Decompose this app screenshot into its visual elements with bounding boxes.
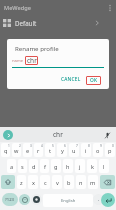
button[interactable]: OK bbox=[86, 76, 101, 85]
button[interactable]: z bbox=[17, 175, 26, 189]
staticText: z bbox=[20, 179, 23, 187]
button[interactable]: Enter bbox=[101, 193, 115, 207]
button[interactable]: o bbox=[93, 143, 103, 157]
button[interactable]: q bbox=[1, 143, 10, 157]
button[interactable]: i bbox=[81, 143, 91, 157]
button[interactable]: d bbox=[29, 159, 38, 173]
staticText: k bbox=[91, 163, 94, 171]
button[interactable]: Open toolbar bbox=[3, 130, 13, 140]
button[interactable]: x bbox=[28, 175, 38, 189]
staticText: 7 bbox=[76, 144, 78, 148]
staticText: q bbox=[4, 147, 8, 155]
staticText: p bbox=[108, 147, 112, 155]
button[interactable]: Shift bbox=[1, 175, 15, 189]
button[interactable]: f bbox=[40, 159, 49, 173]
button[interactable]: Period bbox=[93, 194, 104, 205]
staticText: f bbox=[44, 163, 46, 171]
button[interactable]: a bbox=[7, 159, 16, 173]
staticText: 1 bbox=[8, 144, 10, 148]
button[interactable]: g bbox=[51, 159, 61, 173]
button[interactable]: n bbox=[76, 175, 86, 189]
button[interactable]: English bbox=[43, 194, 93, 207]
staticText: j bbox=[79, 163, 81, 171]
button[interactable]: v bbox=[52, 175, 62, 189]
staticText: . bbox=[98, 196, 100, 203]
button[interactable]: More options bbox=[104, 2, 116, 14]
staticText: 8 bbox=[88, 144, 90, 148]
staticText: s bbox=[21, 163, 24, 171]
button[interactable]: r bbox=[34, 143, 43, 157]
staticText: i bbox=[85, 147, 87, 155]
staticText: Rename profile bbox=[15, 44, 59, 52]
staticText: CANCEL bbox=[61, 76, 81, 83]
button[interactable]: k bbox=[87, 159, 97, 173]
button[interactable]: u bbox=[69, 143, 79, 157]
staticText: r bbox=[37, 147, 40, 155]
button[interactable]: b bbox=[64, 175, 74, 189]
staticText: t bbox=[49, 147, 52, 155]
staticText: x bbox=[32, 179, 35, 187]
staticText: b bbox=[67, 179, 71, 187]
staticText: e bbox=[26, 147, 30, 155]
staticText: chr bbox=[53, 130, 63, 139]
button[interactable]: m bbox=[88, 175, 98, 189]
staticText: n bbox=[79, 179, 83, 187]
button[interactable]: Default bbox=[0, 16, 116, 29]
button[interactable]: CANCEL bbox=[58, 73, 83, 85]
staticText: h bbox=[66, 163, 70, 171]
button[interactable]: h bbox=[63, 159, 73, 173]
button[interactable]: j bbox=[75, 159, 85, 173]
button[interactable]: Settings bbox=[31, 194, 42, 205]
staticText: u bbox=[72, 147, 76, 155]
staticText: g bbox=[54, 163, 58, 171]
staticText: v bbox=[56, 179, 59, 187]
button[interactable]: c bbox=[40, 175, 50, 189]
staticText: 5 bbox=[52, 144, 54, 148]
staticText: d bbox=[32, 163, 36, 171]
staticText: English bbox=[61, 198, 76, 204]
staticText: Default bbox=[15, 19, 37, 27]
staticText: name bbox=[12, 58, 24, 64]
staticText: 4 bbox=[41, 144, 43, 148]
staticText: 6 bbox=[64, 144, 66, 148]
staticText: 0 bbox=[112, 144, 114, 148]
button[interactable]: l bbox=[99, 159, 109, 173]
staticText: 9 bbox=[100, 144, 102, 148]
staticText: ?123 bbox=[5, 197, 15, 203]
button[interactable]: Backspace bbox=[100, 175, 115, 189]
staticText: 2 bbox=[19, 144, 21, 148]
staticText: 3 bbox=[30, 144, 32, 148]
staticText: chr bbox=[27, 56, 37, 65]
staticText: y bbox=[61, 147, 64, 155]
button[interactable]: t bbox=[45, 143, 55, 157]
button[interactable]: s bbox=[18, 159, 27, 173]
button[interactable]: Voice input off bbox=[102, 130, 112, 140]
staticText: l bbox=[103, 163, 105, 171]
staticText: OK bbox=[90, 77, 98, 84]
button[interactable]: w bbox=[12, 143, 21, 157]
staticText: c bbox=[44, 179, 47, 187]
staticText: w bbox=[14, 147, 19, 155]
staticText: MeWedge bbox=[4, 4, 31, 12]
staticText: m bbox=[90, 179, 96, 187]
button[interactable]: y bbox=[57, 143, 67, 157]
staticText: o bbox=[96, 147, 100, 155]
button[interactable]: ?123 bbox=[2, 193, 18, 206]
button[interactable]: e bbox=[23, 143, 32, 157]
staticText: a bbox=[10, 163, 14, 171]
button[interactable]: Emoji bbox=[19, 194, 30, 205]
button[interactable]: p bbox=[105, 143, 115, 157]
